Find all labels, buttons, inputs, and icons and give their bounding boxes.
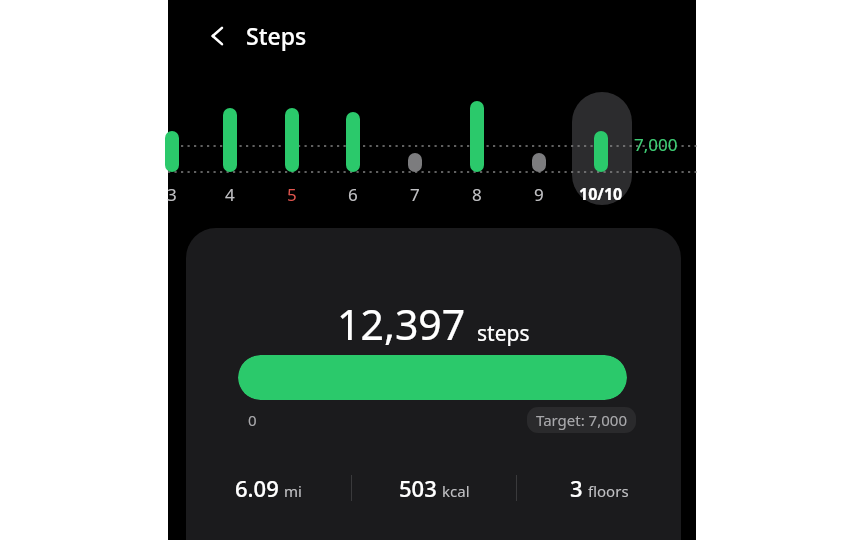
staticText: Target: 7,000 xyxy=(536,410,627,430)
button[interactable] xyxy=(238,355,627,400)
button[interactable]: 8 xyxy=(462,182,492,206)
staticText: 7,000 xyxy=(634,133,678,156)
staticText: 9 xyxy=(534,183,544,206)
button[interactable]: 4 xyxy=(215,182,245,206)
button[interactable]: 5 xyxy=(277,182,307,206)
staticText: 3 xyxy=(167,183,177,206)
button[interactable]: 9 xyxy=(524,182,554,206)
button[interactable]: 3 xyxy=(157,182,187,206)
staticText: 12,397 xyxy=(337,296,466,352)
staticText: mi xyxy=(284,481,302,501)
button[interactable]: 3 xyxy=(517,473,681,503)
staticText: 6 xyxy=(348,183,358,206)
staticText: 5 xyxy=(287,183,297,206)
button[interactable]: 10/10 xyxy=(573,182,629,206)
staticText: floors xyxy=(588,481,629,501)
button[interactable]: Back xyxy=(196,14,240,58)
staticText: 7 xyxy=(410,183,420,206)
staticText: 503 xyxy=(399,473,437,503)
staticText: 0 xyxy=(248,410,257,430)
button[interactable] xyxy=(572,92,632,205)
staticText: 4 xyxy=(225,183,235,206)
staticText: Steps xyxy=(246,20,307,51)
staticText: 8 xyxy=(472,183,482,206)
staticText: 6.09 xyxy=(235,473,279,503)
button[interactable]: 6.09 xyxy=(186,473,351,503)
staticText: 10/10 xyxy=(579,183,623,205)
staticText: kcal xyxy=(442,481,470,501)
button[interactable]: 7 xyxy=(400,182,430,206)
button[interactable]: 6 xyxy=(338,182,368,206)
staticText: 3 xyxy=(570,473,583,503)
button[interactable]: 503 xyxy=(352,473,516,503)
staticText: steps xyxy=(477,319,530,348)
